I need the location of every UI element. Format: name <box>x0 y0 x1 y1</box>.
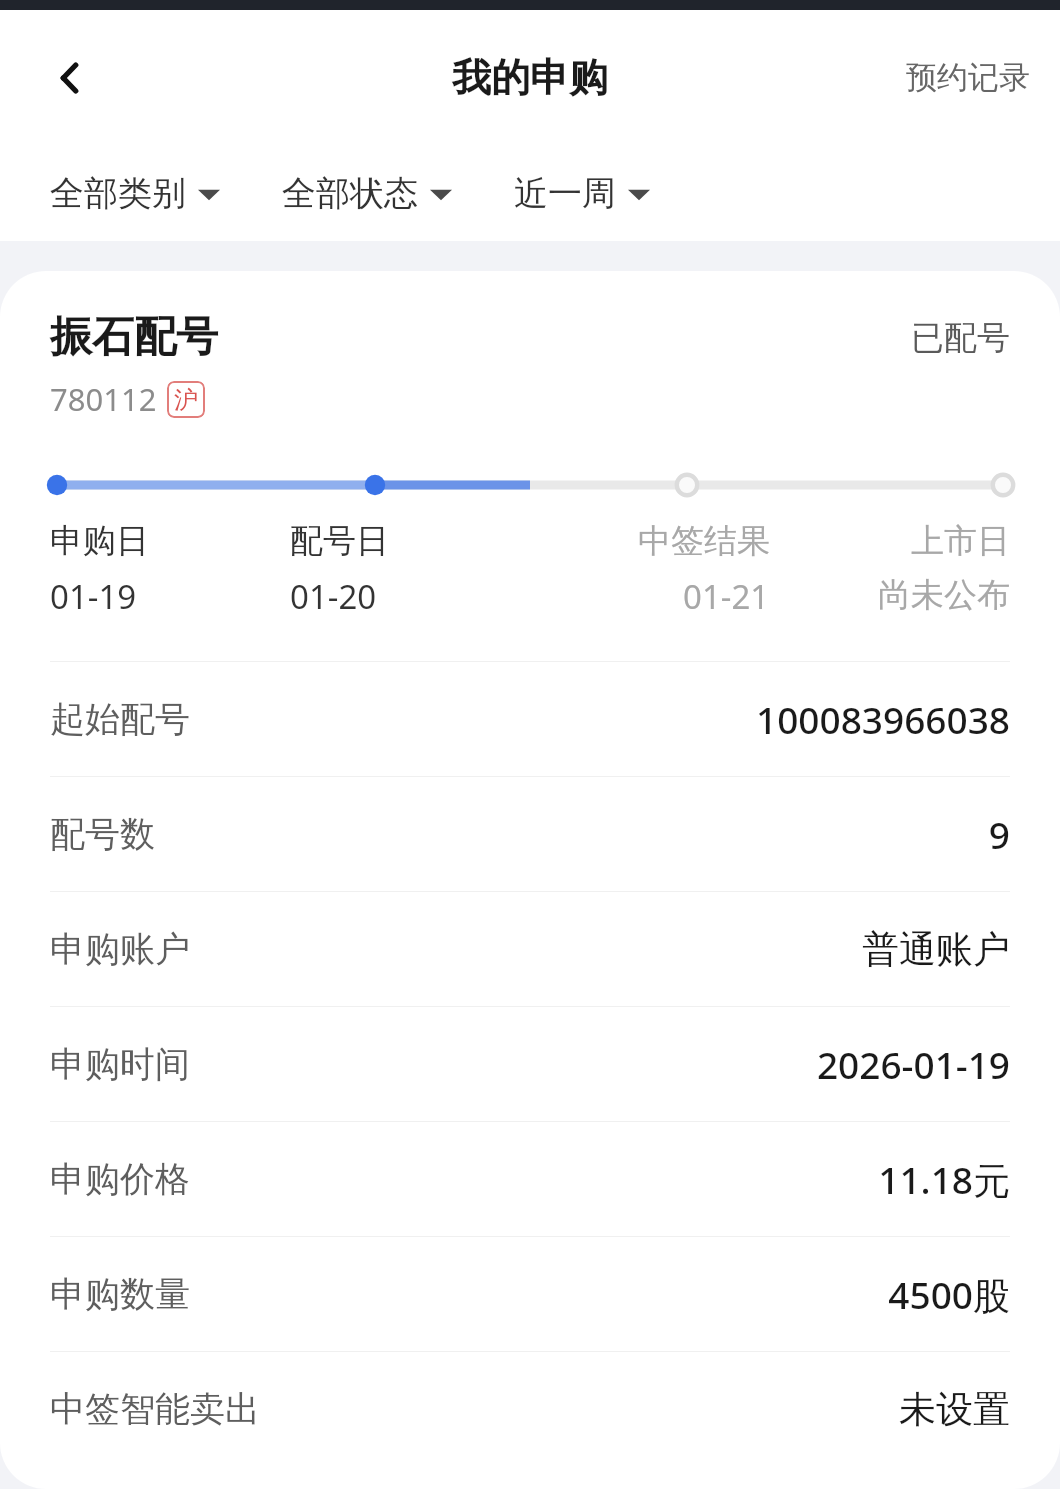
staticText: 01-20 <box>290 574 377 619</box>
button[interactable]: 申购数量 <box>0 1237 1060 1351</box>
staticText: 780112 <box>50 378 157 420</box>
staticText: 配号日 <box>290 520 389 562</box>
staticText: 沪 <box>174 385 198 415</box>
staticText: 未设置 <box>899 1386 1010 1433</box>
staticText: 普通账户 <box>862 926 1010 973</box>
staticText: 中签智能卖出 <box>50 1387 260 1431</box>
button[interactable]: 全部类别 <box>44 162 226 225</box>
button[interactable]: 配号数 <box>0 777 1060 891</box>
staticText: 申购数量 <box>50 1272 190 1316</box>
staticText: 申购价格 <box>50 1157 190 1201</box>
staticText: 配号数 <box>50 812 155 856</box>
button[interactable]: 申购价格 <box>0 1122 1060 1236</box>
staticText: 起始配号 <box>50 697 190 741</box>
button[interactable]: 振石配号 <box>0 271 1060 1489</box>
staticText: 01-21 <box>683 574 770 619</box>
button[interactable]: 预约记录 <box>892 46 1044 109</box>
button[interactable]: 中签智能卖出 <box>0 1352 1060 1466</box>
staticText: 全部类别 <box>50 172 186 215</box>
staticText: 申购时间 <box>50 1042 190 1086</box>
button[interactable]: Back <box>22 30 118 126</box>
staticText: 申购账户 <box>50 927 190 971</box>
staticText: 振石配号 <box>50 311 218 364</box>
button[interactable]: 全部状态 <box>276 162 458 225</box>
button[interactable]: 申购账户 <box>0 892 1060 1006</box>
staticText: 01-19 <box>50 574 137 619</box>
staticText: 申购日 <box>50 520 149 562</box>
staticText: 已配号 <box>911 317 1010 359</box>
button[interactable]: 近一周 <box>508 162 656 225</box>
staticText: 近一周 <box>514 172 616 215</box>
staticText: 4500股 <box>888 1269 1010 1320</box>
button[interactable]: 申购时间 <box>0 1007 1060 1121</box>
staticText: 我的申购 <box>452 53 608 102</box>
staticText: 预约记录 <box>906 58 1030 97</box>
staticText: 全部状态 <box>282 172 418 215</box>
staticText: 中签结果 <box>638 520 770 562</box>
staticText: 11.18元 <box>878 1154 1010 1205</box>
staticText: 尚未公布 <box>878 574 1010 616</box>
staticText: 上市日 <box>911 520 1010 562</box>
staticText: 2026-01-19 <box>816 1039 1010 1089</box>
staticText: 100083966038 <box>756 694 1010 744</box>
staticText: 9 <box>988 809 1010 859</box>
button[interactable]: 起始配号 <box>0 662 1060 776</box>
